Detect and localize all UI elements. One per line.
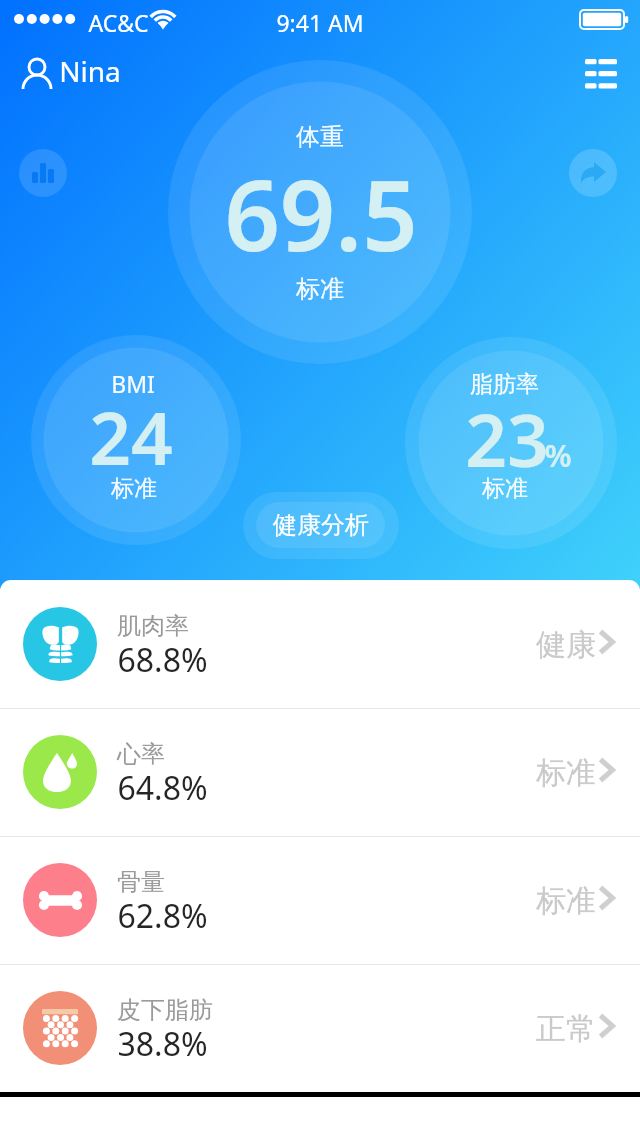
button[interactable] (190, 82, 451, 343)
staticText: 标准 (536, 882, 596, 920)
staticText: 脂肪率 (470, 370, 539, 399)
staticText: 健康 (536, 626, 596, 664)
button[interactable] (418, 350, 604, 536)
staticText: AC&C (88, 7, 149, 38)
staticText: BMI (111, 368, 155, 399)
staticText: 38.8% (117, 1022, 208, 1066)
button[interactable]: Statistics (19, 149, 67, 197)
staticText: 骨量 (117, 867, 165, 897)
staticText: 正常 (536, 1010, 596, 1048)
button[interactable]: 健康分析 (256, 502, 385, 548)
button[interactable]: 骨量 (0, 836, 640, 964)
staticText: Nina (59, 52, 121, 90)
button[interactable]: Nina (18, 52, 121, 92)
staticText: 标准 (482, 474, 528, 503)
staticText: 62.8% (117, 894, 208, 938)
staticText: 标准 (296, 274, 344, 304)
staticText: 68.8% (117, 638, 208, 682)
button[interactable]: 皮下脂肪 (0, 964, 640, 1092)
button[interactable]: Menu (572, 46, 628, 102)
staticText: 心率 (117, 739, 165, 769)
button[interactable]: Share (569, 149, 617, 197)
staticText: % (544, 434, 572, 476)
staticText: 69.5 (224, 147, 418, 279)
staticText: 皮下脂肪 (117, 995, 213, 1025)
staticText: 24 (89, 387, 173, 486)
button[interactable]: 心率 (0, 708, 640, 836)
staticText: 23 (465, 389, 549, 488)
staticText: 体重 (296, 122, 344, 152)
staticText: 标准 (536, 754, 596, 792)
staticText: 64.8% (117, 766, 208, 810)
staticText: 9:41 AM (276, 7, 364, 38)
staticText: 肌肉率 (117, 611, 189, 641)
button[interactable]: 肌肉率 (0, 580, 640, 708)
staticText: 健康分析 (273, 510, 369, 540)
staticText: 标准 (111, 474, 157, 503)
button[interactable] (43, 347, 229, 533)
